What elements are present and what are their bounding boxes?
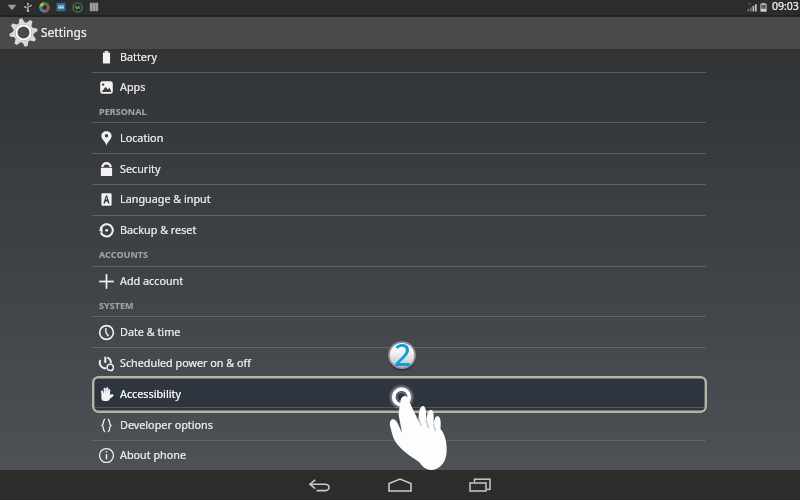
staticText: Date & time [120, 324, 181, 339]
button[interactable]: Date & time [92, 317, 706, 348]
staticText: Location [120, 130, 164, 145]
staticText: 2 [394, 334, 412, 375]
button[interactable]: Back [290, 470, 350, 500]
button[interactable]: Language & input [92, 184, 706, 215]
staticText: Backup & reset [120, 222, 197, 237]
button[interactable]: Home [370, 470, 430, 500]
staticText: 09:03 [772, 0, 799, 13]
staticText: Battery [120, 49, 157, 64]
button[interactable]: Battery [92, 42, 706, 73]
button[interactable]: Apps [92, 72, 706, 103]
staticText: SYSTEM [99, 299, 134, 311]
button[interactable]: About phone [92, 440, 706, 471]
button[interactable]: Accessibility [92, 376, 707, 413]
staticText: About phone [120, 447, 187, 462]
staticText: Settings [41, 24, 87, 40]
staticText: Accessibility [120, 386, 181, 401]
staticText: Scheduled power on & off [120, 355, 251, 370]
staticText: Apps [120, 79, 146, 94]
button[interactable]: Recents [450, 470, 510, 500]
staticText: Developer options [120, 417, 213, 432]
button[interactable]: Location [92, 123, 706, 154]
button[interactable]: Developer options [92, 410, 706, 441]
button[interactable]: Backup & reset [92, 215, 706, 246]
staticText: Security [120, 161, 161, 176]
button[interactable]: Security [92, 154, 706, 185]
staticText: PERSONAL [99, 105, 147, 117]
staticText: Language & input [120, 191, 211, 206]
staticText: ACCOUNTS [99, 248, 149, 260]
button[interactable]: Scheduled power on & off [92, 348, 706, 379]
button[interactable]: Add account [92, 266, 706, 297]
staticText: Add account [120, 273, 184, 288]
